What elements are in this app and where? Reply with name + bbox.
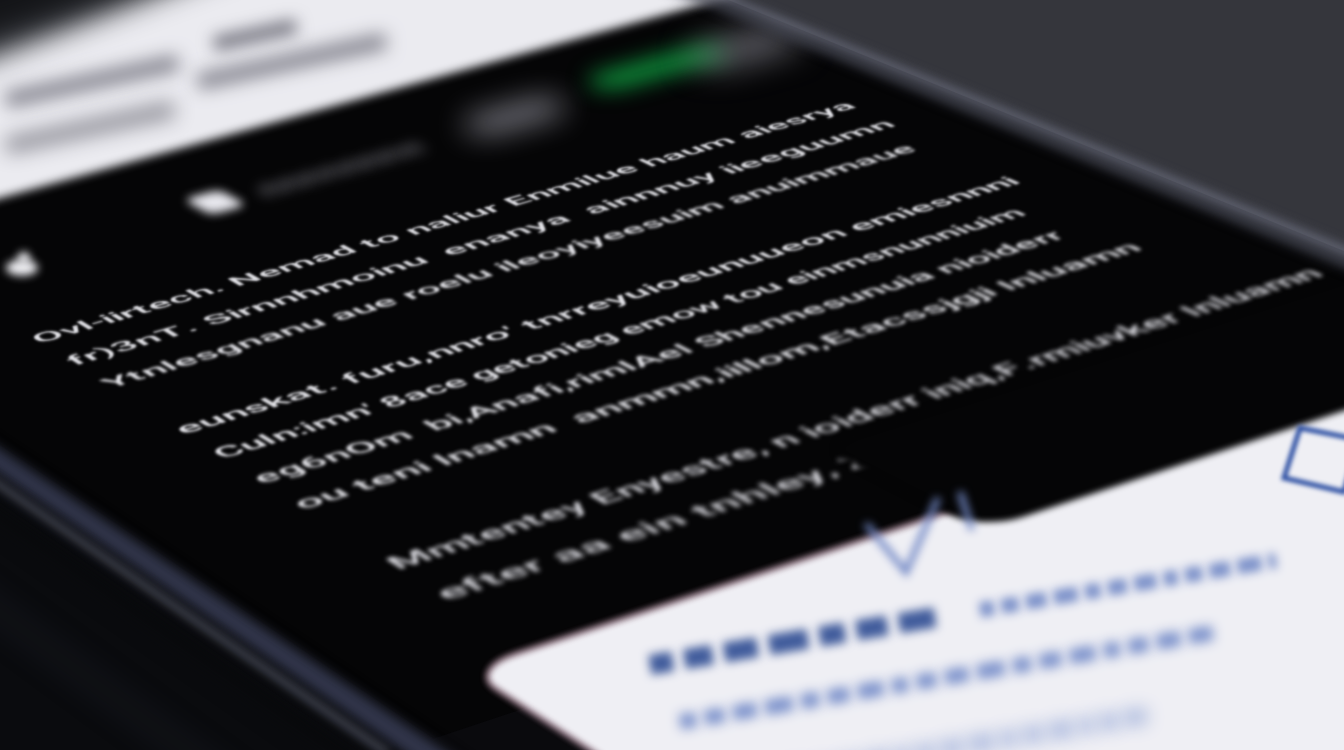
button[interactable]: Phone showing an article bbox=[0, 0, 1344, 750]
